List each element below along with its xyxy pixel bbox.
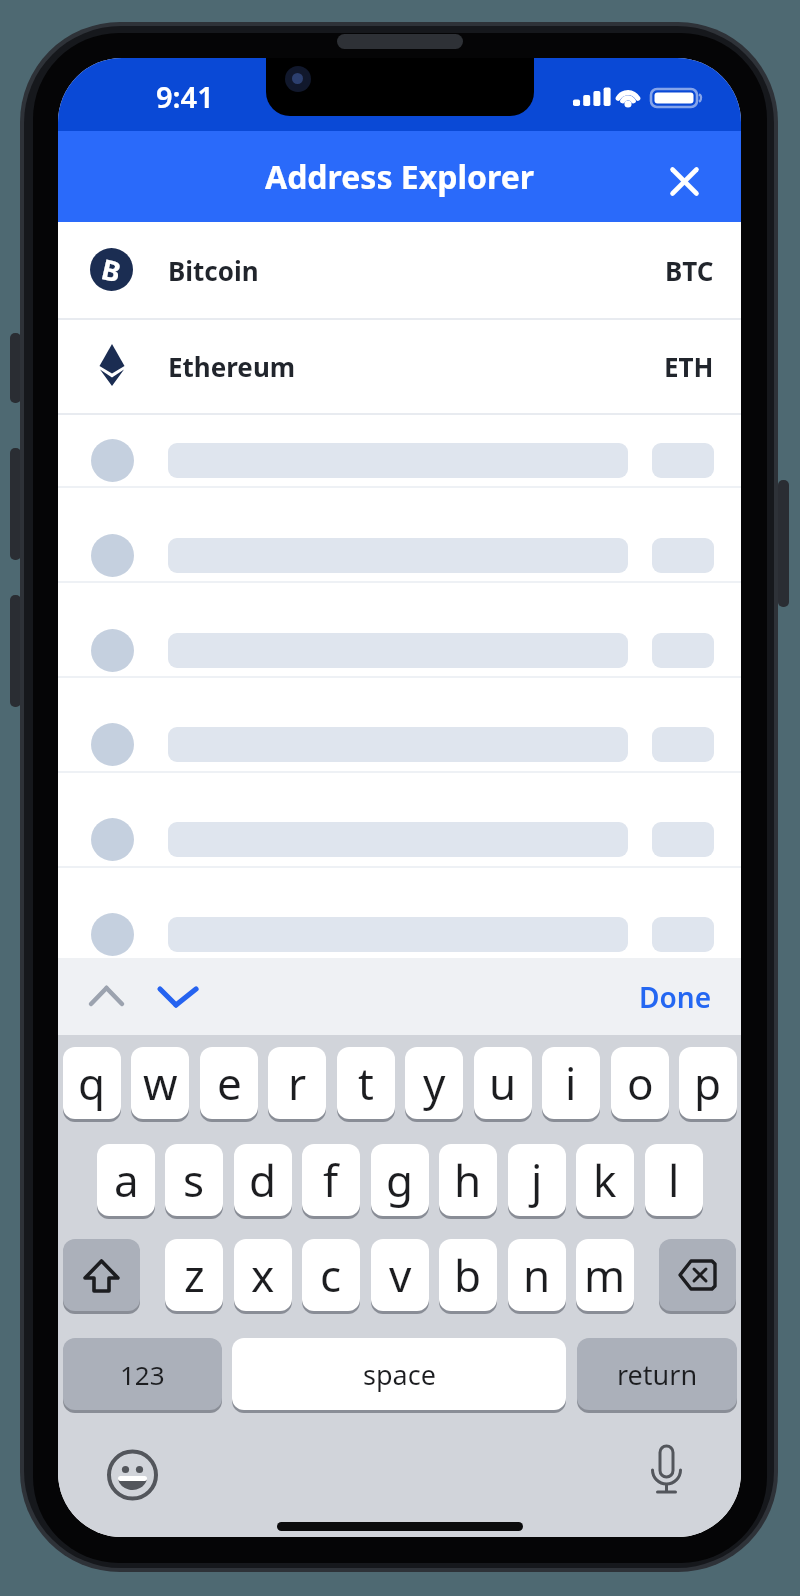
staticText: j	[531, 1150, 543, 1210]
staticText: Bitcoin	[168, 253, 259, 288]
staticText: h	[454, 1150, 482, 1210]
staticText: k	[593, 1150, 617, 1210]
button[interactable]: r	[268, 1047, 326, 1119]
staticText: g	[386, 1150, 414, 1210]
staticText: u	[489, 1053, 517, 1113]
staticText: f	[323, 1150, 339, 1210]
button[interactable]: g	[371, 1144, 429, 1216]
button[interactable]: y	[405, 1047, 463, 1119]
button[interactable]	[659, 1239, 736, 1311]
button[interactable]: e	[200, 1047, 258, 1119]
button[interactable]: l	[645, 1144, 703, 1216]
staticText: n	[523, 1245, 551, 1305]
button[interactable]	[638, 1447, 695, 1504]
button[interactable]: w	[131, 1047, 189, 1119]
staticText: return	[617, 1356, 698, 1393]
staticText: y	[423, 1053, 446, 1113]
staticText: o	[627, 1053, 654, 1113]
button[interactable]: s	[165, 1144, 223, 1216]
staticText: a	[114, 1150, 139, 1210]
staticText: Done	[639, 978, 712, 1016]
button[interactable]: o	[611, 1047, 669, 1119]
button[interactable]: n	[508, 1239, 566, 1311]
staticText: Address Explorer	[265, 155, 535, 199]
button[interactable]: v	[371, 1239, 429, 1311]
staticText: c	[320, 1245, 342, 1305]
staticText: l	[668, 1150, 680, 1210]
button[interactable]: d	[234, 1144, 292, 1216]
staticText: p	[694, 1053, 722, 1113]
button[interactable]: return	[577, 1338, 737, 1410]
button[interactable]: Done	[558, 958, 712, 1035]
button[interactable]: c	[302, 1239, 360, 1311]
staticText: x	[251, 1245, 275, 1305]
staticText: t	[358, 1053, 374, 1113]
button[interactable]	[662, 159, 707, 204]
staticText: e	[217, 1053, 242, 1113]
staticText: b	[454, 1245, 482, 1305]
button[interactable]: space	[232, 1338, 566, 1410]
button[interactable]: q	[63, 1047, 121, 1119]
button[interactable]: i	[542, 1047, 600, 1119]
button[interactable]: a	[97, 1144, 155, 1216]
button[interactable]	[78, 973, 138, 1021]
button[interactable]: m	[576, 1239, 634, 1311]
staticText: d	[249, 1150, 277, 1210]
staticText: space	[363, 1356, 436, 1393]
staticText: z	[184, 1245, 205, 1305]
staticText: w	[143, 1053, 178, 1113]
staticText: 9:41	[156, 77, 214, 111]
button[interactable]: z	[165, 1239, 223, 1311]
staticText: v	[389, 1245, 412, 1305]
button[interactable]: h	[439, 1144, 497, 1216]
staticText: r	[288, 1053, 307, 1113]
staticText: Ethereum	[168, 349, 296, 384]
button[interactable]: 123	[63, 1338, 222, 1410]
staticText: q	[78, 1053, 106, 1113]
button[interactable]: x	[234, 1239, 292, 1311]
button[interactable]: b	[439, 1239, 497, 1311]
button[interactable]	[58, 320, 741, 413]
button[interactable]	[104, 1447, 161, 1504]
button[interactable]: k	[576, 1144, 634, 1216]
staticText: i	[565, 1053, 577, 1113]
staticText: B	[98, 249, 125, 291]
staticText: m	[584, 1245, 626, 1305]
staticText: 123	[120, 1357, 165, 1392]
button[interactable]: f	[302, 1144, 360, 1216]
staticText: BTC	[665, 253, 714, 288]
button[interactable]	[58, 222, 741, 318]
button[interactable]	[148, 973, 208, 1021]
staticText: s	[183, 1150, 205, 1210]
button[interactable]: p	[679, 1047, 737, 1119]
button[interactable]	[63, 1239, 140, 1311]
staticText: ETH	[664, 349, 714, 384]
button[interactable]: j	[508, 1144, 566, 1216]
button[interactable]: u	[474, 1047, 532, 1119]
button[interactable]: t	[337, 1047, 395, 1119]
